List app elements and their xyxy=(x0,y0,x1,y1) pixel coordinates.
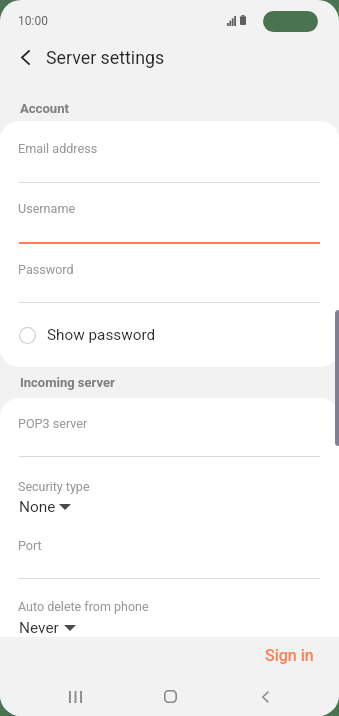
button[interactable]: Sign in xyxy=(252,642,326,668)
staticText: 10:00 xyxy=(18,14,48,28)
button[interactable] xyxy=(13,613,82,637)
staticText: Password xyxy=(18,262,74,277)
staticText: POP3 server xyxy=(18,416,88,431)
button[interactable]: Home xyxy=(132,677,208,716)
staticText: Port xyxy=(18,538,42,553)
button[interactable]: Navigate up xyxy=(6,39,43,76)
button[interactable]: Back xyxy=(227,677,303,716)
button[interactable] xyxy=(13,492,77,522)
staticText: Email address xyxy=(18,141,98,156)
staticText: Security type xyxy=(18,479,90,494)
staticText: Auto delete from phone xyxy=(18,599,149,614)
staticText: Incoming server xyxy=(20,375,115,390)
staticText: Show password xyxy=(47,326,156,344)
button[interactable]: Recent apps xyxy=(37,677,113,716)
staticText: None xyxy=(19,498,56,516)
staticText: Never xyxy=(19,619,59,637)
staticText: Account xyxy=(20,101,69,116)
staticText: Sign in xyxy=(265,646,314,665)
staticText: Username xyxy=(18,201,76,216)
button[interactable]: Show password xyxy=(0,309,339,361)
staticText: Server settings xyxy=(46,47,165,68)
